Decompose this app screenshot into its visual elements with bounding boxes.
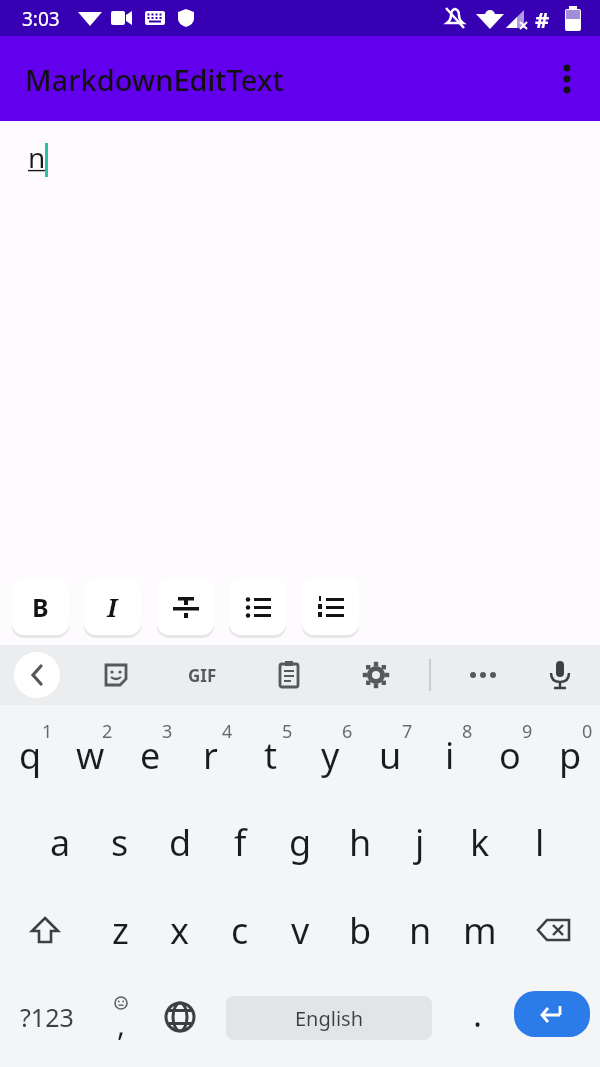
staticText: c bbox=[231, 906, 249, 955]
button[interactable] bbox=[14, 892, 76, 972]
button[interactable]: l bbox=[511, 802, 569, 882]
staticText: t bbox=[264, 731, 277, 780]
staticText: d bbox=[169, 818, 192, 867]
button[interactable]: f bbox=[211, 802, 269, 882]
staticText: b bbox=[349, 906, 372, 955]
staticText: y bbox=[321, 731, 340, 780]
button[interactable]: h bbox=[331, 802, 389, 882]
button[interactable] bbox=[537, 652, 583, 698]
button[interactable]: w bbox=[61, 715, 119, 795]
button[interactable]: GIF bbox=[179, 652, 225, 698]
staticText: English bbox=[295, 1005, 364, 1032]
staticText: m bbox=[463, 906, 497, 955]
button[interactable]: e bbox=[121, 715, 179, 795]
staticText: g bbox=[289, 818, 312, 867]
staticText: n bbox=[28, 138, 46, 176]
staticText: . bbox=[473, 991, 483, 1037]
staticText: MarkdownEditText bbox=[25, 60, 284, 99]
button[interactable]: ?123 bbox=[16, 977, 78, 1057]
button[interactable]: t bbox=[241, 715, 299, 795]
staticText: a bbox=[50, 818, 71, 867]
staticText: 7 bbox=[402, 719, 413, 744]
staticText: s bbox=[111, 818, 129, 867]
staticText: k bbox=[470, 818, 490, 867]
staticText: l bbox=[535, 818, 545, 867]
staticText: w bbox=[76, 731, 105, 780]
staticText: o bbox=[499, 731, 521, 780]
button[interactable] bbox=[302, 578, 359, 635]
staticText: 9 bbox=[522, 719, 533, 744]
button[interactable]: x bbox=[151, 890, 209, 970]
button[interactable]: English bbox=[226, 996, 432, 1040]
staticText: 3:03 bbox=[22, 6, 60, 32]
button[interactable]: B bbox=[12, 578, 69, 635]
button[interactable]: I bbox=[84, 578, 141, 635]
button[interactable] bbox=[229, 578, 286, 635]
staticText: I bbox=[107, 590, 118, 624]
staticText: n bbox=[409, 906, 432, 955]
button[interactable]: g bbox=[271, 802, 329, 882]
staticText: h bbox=[349, 818, 372, 867]
button[interactable]: . bbox=[449, 977, 507, 1057]
staticText: , bbox=[117, 1004, 126, 1045]
button[interactable]: z bbox=[91, 890, 149, 970]
button[interactable]: q bbox=[1, 715, 59, 795]
button[interactable]: p bbox=[541, 715, 599, 795]
button[interactable]: y bbox=[301, 715, 359, 795]
button[interactable]: o bbox=[481, 715, 539, 795]
staticText: z bbox=[112, 906, 129, 955]
button[interactable] bbox=[14, 652, 60, 698]
staticText: j bbox=[415, 818, 425, 867]
staticText: B bbox=[32, 590, 49, 624]
button[interactable]: b bbox=[331, 890, 389, 970]
button[interactable]: j bbox=[391, 802, 449, 882]
button[interactable]: s bbox=[91, 802, 149, 882]
staticText: x bbox=[170, 906, 190, 955]
button[interactable]: a bbox=[31, 802, 89, 882]
button[interactable] bbox=[157, 578, 214, 635]
staticText: 0 bbox=[582, 719, 593, 744]
staticText: p bbox=[559, 731, 582, 780]
button[interactable]: n bbox=[391, 890, 449, 970]
button[interactable]: d bbox=[151, 802, 209, 882]
staticText: 5 bbox=[282, 719, 293, 744]
staticText: q bbox=[19, 731, 42, 780]
staticText: i bbox=[445, 731, 455, 780]
button[interactable] bbox=[353, 652, 399, 698]
staticText: u bbox=[379, 731, 402, 780]
staticText: ?123 bbox=[20, 1000, 74, 1034]
button[interactable]: m bbox=[451, 890, 509, 970]
staticText: 1 bbox=[42, 719, 53, 744]
staticText: f bbox=[234, 818, 247, 867]
button[interactable] bbox=[514, 991, 590, 1037]
button[interactable] bbox=[93, 652, 139, 698]
button[interactable] bbox=[522, 892, 586, 972]
staticText: 4 bbox=[222, 719, 233, 744]
staticText: # bbox=[535, 4, 550, 34]
button[interactable] bbox=[151, 977, 209, 1057]
staticText: 3 bbox=[162, 719, 173, 744]
staticText: 8 bbox=[462, 719, 473, 744]
button[interactable]: u bbox=[361, 715, 419, 795]
button[interactable]: k bbox=[451, 802, 509, 882]
button[interactable]: r bbox=[181, 715, 239, 795]
button[interactable]: , bbox=[92, 977, 150, 1057]
button[interactable] bbox=[266, 652, 312, 698]
button[interactable]: c bbox=[211, 890, 269, 970]
button[interactable]: v bbox=[271, 890, 329, 970]
staticText: 2 bbox=[102, 719, 113, 744]
button[interactable] bbox=[547, 59, 587, 99]
staticText: v bbox=[291, 906, 310, 955]
staticText: GIF bbox=[188, 664, 217, 687]
button[interactable] bbox=[460, 652, 506, 698]
staticText: 6 bbox=[342, 719, 353, 744]
staticText: e bbox=[140, 731, 161, 780]
staticText: r bbox=[203, 731, 218, 780]
button[interactable]: i bbox=[421, 715, 479, 795]
